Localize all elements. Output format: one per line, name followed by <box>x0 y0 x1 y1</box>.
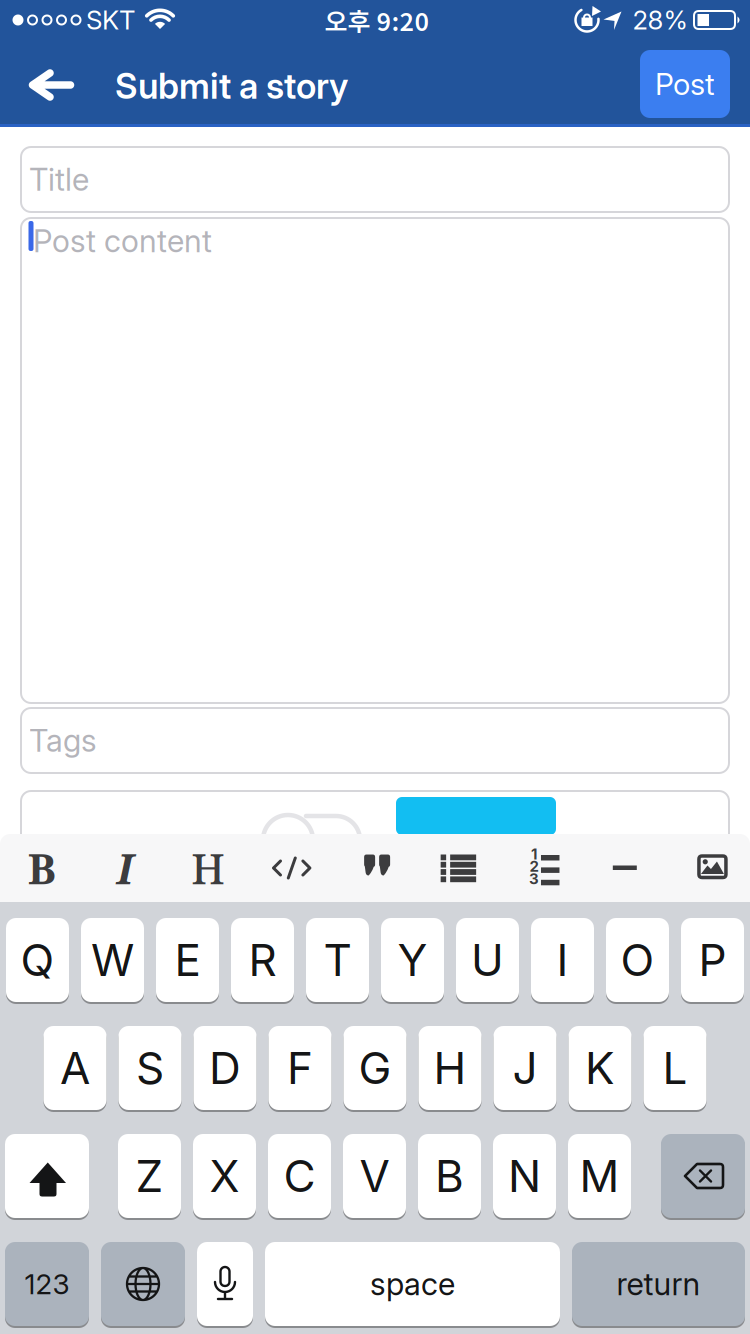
button[interactable]: U <box>456 918 519 1002</box>
staticText: SKT <box>86 4 136 36</box>
staticText: H <box>433 1041 466 1095</box>
button[interactable]: B <box>418 1134 481 1218</box>
staticText: D <box>209 1041 241 1095</box>
staticText: 123 <box>24 1267 69 1301</box>
staticText: K <box>585 1041 615 1095</box>
button[interactable]: Next keyboard <box>101 1242 185 1326</box>
button[interactable]: Post <box>640 50 730 118</box>
staticText: S <box>136 1041 164 1095</box>
button[interactable]: Bold <box>0 834 83 902</box>
staticText: 28% <box>632 4 687 36</box>
button[interactable]: Italic <box>83 834 167 902</box>
button[interactable]: Horizontal rule <box>583 834 667 902</box>
button[interactable]: P <box>681 918 744 1002</box>
staticText: Q <box>20 933 54 987</box>
button[interactable]: R <box>231 918 294 1002</box>
button[interactable]: D <box>193 1026 256 1110</box>
button[interactable]: C <box>268 1134 331 1218</box>
button[interactable]: E <box>156 918 219 1002</box>
staticText: P <box>698 933 726 987</box>
staticText: return <box>616 1265 700 1303</box>
button[interactable]: Code <box>250 834 333 902</box>
button[interactable]: Z <box>118 1134 181 1218</box>
staticText: C <box>283 1149 315 1203</box>
staticText: J <box>512 1041 537 1095</box>
staticText: F <box>287 1041 313 1095</box>
staticText: L <box>662 1041 687 1095</box>
button[interactable]: N <box>493 1134 556 1218</box>
staticText: Submit a story <box>115 65 348 107</box>
button[interactable]: O <box>606 918 669 1002</box>
button[interactable]: return <box>572 1242 745 1326</box>
button[interactable]: space <box>265 1242 560 1326</box>
button[interactable]: F <box>268 1026 331 1110</box>
staticText: Tags <box>29 722 97 759</box>
staticText: B <box>435 1149 464 1203</box>
button[interactable]: V <box>343 1134 406 1218</box>
button[interactable]: Title <box>21 147 729 212</box>
staticText: V <box>359 1149 389 1203</box>
staticText: I <box>116 839 133 897</box>
button[interactable]: X <box>193 1134 256 1218</box>
button[interactable]: J <box>493 1026 556 1110</box>
button[interactable]: W <box>81 918 144 1002</box>
button[interactable]: K <box>568 1026 631 1110</box>
button[interactable]: H <box>418 1026 481 1110</box>
button[interactable]: 123 <box>5 1242 89 1326</box>
button[interactable]: Insert image <box>667 834 750 902</box>
button[interactable]: I <box>531 918 594 1002</box>
staticText: 오후 9:20 <box>324 2 429 38</box>
staticText: Y <box>397 933 427 987</box>
staticText: 3 <box>529 870 539 888</box>
button[interactable]: Upload <box>396 797 556 835</box>
staticText: W <box>91 933 134 987</box>
button[interactable]: Numbered list <box>500 834 583 902</box>
staticText: Post content <box>33 222 212 260</box>
button[interactable]: Tags <box>21 708 729 773</box>
staticText: 2 <box>529 857 538 875</box>
button[interactable]: Dictate <box>197 1242 253 1326</box>
button[interactable]: L <box>643 1026 706 1110</box>
button[interactable]: G <box>343 1026 406 1110</box>
staticText: space <box>370 1265 455 1303</box>
staticText: H <box>191 839 225 897</box>
staticText: X <box>209 1149 239 1203</box>
button[interactable]: Back <box>20 56 84 114</box>
staticText: M <box>579 1149 619 1203</box>
button[interactable]: S <box>118 1026 181 1110</box>
staticText: T <box>323 933 351 987</box>
button[interactable]: Delete <box>661 1134 745 1218</box>
staticText: E <box>174 933 200 987</box>
button[interactable]: A <box>43 1026 106 1110</box>
button[interactable]: Y <box>381 918 444 1002</box>
staticText: Post <box>655 66 715 102</box>
staticText: 1 <box>531 845 537 863</box>
button[interactable]: Shift <box>5 1134 89 1218</box>
staticText: Z <box>135 1149 163 1203</box>
staticText: R <box>248 933 276 987</box>
button[interactable]: T <box>306 918 369 1002</box>
staticText: B <box>28 839 56 897</box>
button[interactable]: M <box>568 1134 631 1218</box>
staticText: Title <box>29 161 89 198</box>
button[interactable]: Quote <box>333 834 417 902</box>
staticText: N <box>508 1149 541 1203</box>
staticText: I <box>556 933 568 987</box>
button[interactable]: Post content <box>21 218 729 703</box>
staticText: G <box>358 1041 391 1095</box>
button[interactable]: Heading <box>167 834 250 902</box>
staticText: U <box>471 933 504 987</box>
button[interactable]: Q <box>6 918 69 1002</box>
staticText: A <box>60 1041 90 1095</box>
button[interactable]: Bulleted list <box>417 834 500 902</box>
staticText: O <box>620 933 654 987</box>
